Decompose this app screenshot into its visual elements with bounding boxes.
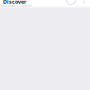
staticText: Secondary caption <box>0 3 31 8</box>
staticText: Discover <box>3 0 26 5</box>
staticText: ıll <box>82 0 85 4</box>
button[interactable]: Profile <box>66 0 75 4</box>
